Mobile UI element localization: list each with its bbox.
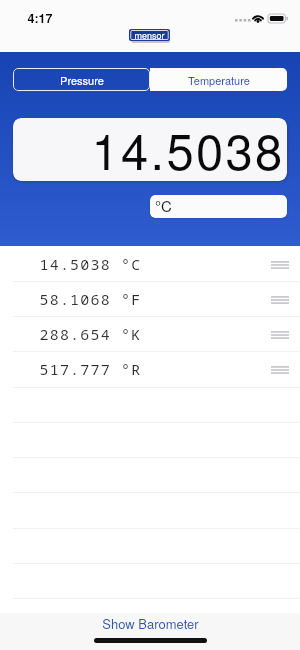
button[interactable]: 14.5038 °C (0, 247, 300, 282)
button[interactable]: 58.1068 °F (0, 282, 300, 317)
button[interactable]: 517.777 °R (0, 352, 300, 387)
button[interactable]: Pressure (13, 68, 150, 91)
staticText: °C (155, 195, 172, 216)
staticText: 14.5038 (91, 118, 285, 177)
staticText: 14.5038 °C (39, 254, 142, 274)
staticText: Pressure (60, 72, 104, 88)
staticText: 4:17 (27, 9, 53, 27)
staticText: mensor (134, 29, 165, 41)
staticText: 288.654 °K (39, 324, 142, 344)
button[interactable]: 288.654 °K (0, 317, 300, 352)
other: Reorder (271, 261, 289, 269)
other: Reorder (271, 296, 289, 304)
button[interactable]: °C (150, 195, 287, 218)
button[interactable]: Show Barometer (0, 613, 300, 637)
staticText: 58.1068 °F (39, 289, 142, 309)
staticText: Temperature (188, 72, 250, 88)
other: Reorder (271, 331, 289, 339)
staticText: 517.777 °R (39, 359, 142, 379)
button[interactable]: Temperature (150, 68, 287, 91)
other: Reorder (271, 366, 289, 374)
staticText: Show Barometer (102, 614, 199, 633)
